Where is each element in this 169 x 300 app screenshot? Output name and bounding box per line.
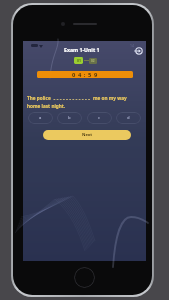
staticText: d — [127, 115, 130, 121]
button[interactable]: c — [87, 112, 112, 124]
button[interactable]: Next — [43, 130, 131, 140]
staticText: 14 — [130, 43, 134, 48]
button[interactable]: Exit exam — [135, 47, 143, 55]
staticText: 02 — [91, 59, 95, 63]
staticText: Exam 1-Unit 1 — [64, 46, 100, 53]
button[interactable]: b — [57, 112, 82, 124]
staticText: b — [68, 115, 71, 121]
staticText: c — [98, 115, 101, 121]
button[interactable]: 02 — [89, 58, 97, 64]
staticText: 01 — [77, 58, 81, 63]
staticText: a — [39, 115, 42, 121]
staticText: Next — [82, 132, 93, 138]
staticText: The police — [27, 95, 51, 101]
button[interactable]: a — [28, 112, 53, 124]
button[interactable]: 04:59 — [37, 71, 133, 78]
staticText: me on my way — [93, 95, 127, 101]
button[interactable]: d — [116, 112, 141, 124]
button[interactable]: 01 — [74, 57, 83, 64]
staticText: home last night. — [27, 103, 66, 109]
staticText: 04:59 — [72, 71, 100, 78]
